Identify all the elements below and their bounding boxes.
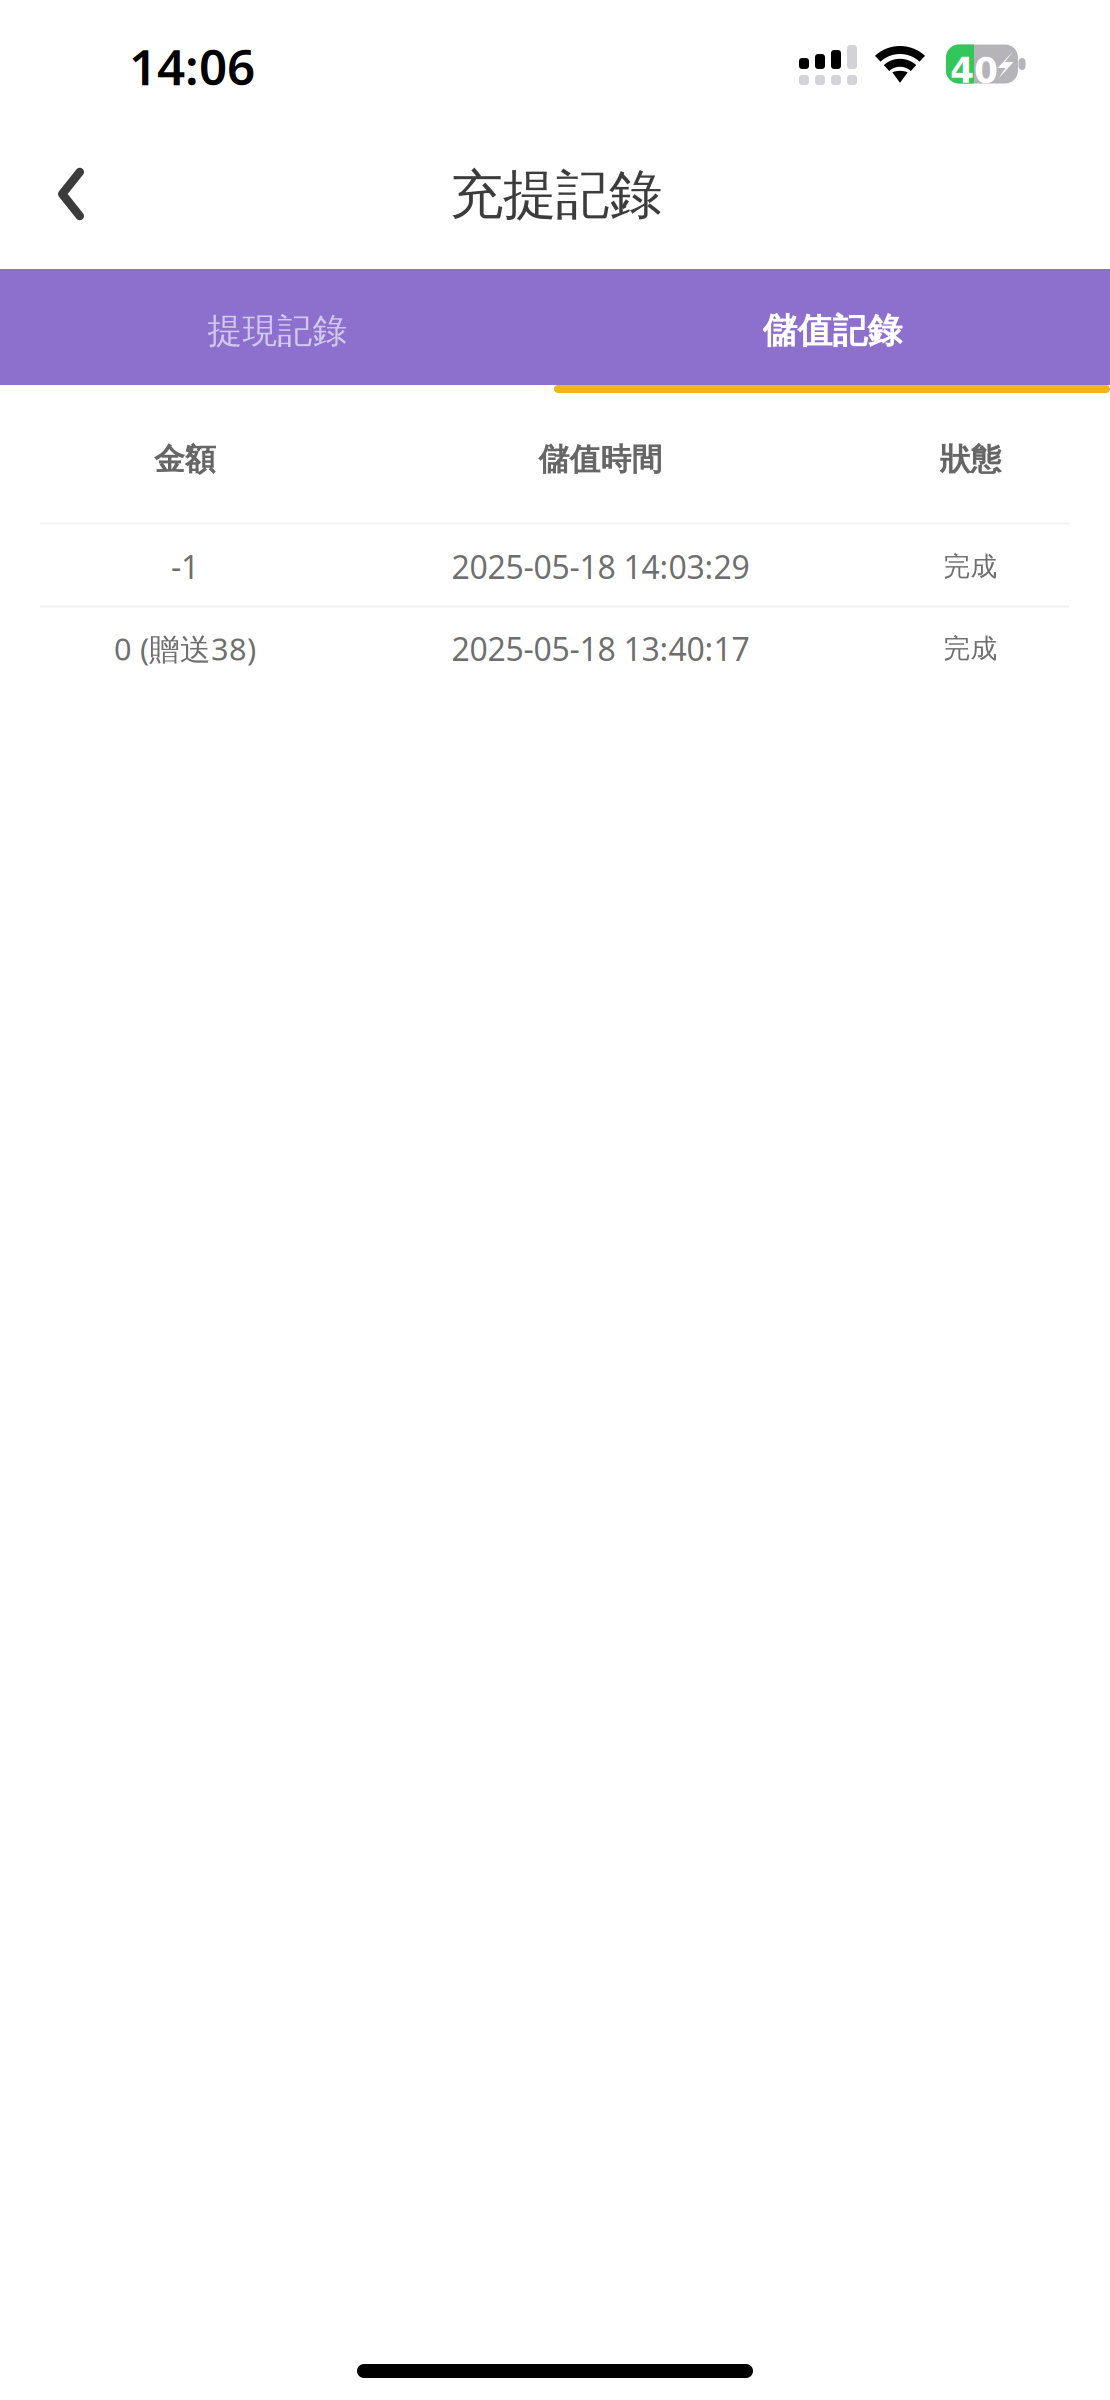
staticText: 提現記錄 — [207, 310, 347, 352]
staticText: 14:06 — [129, 33, 255, 99]
staticText: 完成 — [943, 632, 997, 665]
staticText: 40 — [950, 50, 998, 91]
staticText: 狀態 — [939, 441, 1001, 478]
staticText: -1 — [171, 545, 199, 588]
staticText: 2025-05-18 14:03:29 — [451, 545, 749, 588]
staticText: 儲值時間 — [538, 441, 662, 478]
staticText: 充提記錄 — [450, 162, 662, 228]
staticText: 儲值記錄 — [762, 310, 902, 352]
staticText: 完成 — [943, 550, 997, 583]
staticText: 2025-05-18 13:40:17 — [451, 627, 749, 670]
button[interactable]: 提現記錄 — [0, 269, 555, 385]
staticText: 金額 — [154, 441, 216, 478]
staticText: 0 (贈送38) — [114, 628, 256, 669]
button[interactable]: 儲值記錄 — [555, 269, 1110, 385]
button[interactable]: Back — [16, 139, 126, 249]
